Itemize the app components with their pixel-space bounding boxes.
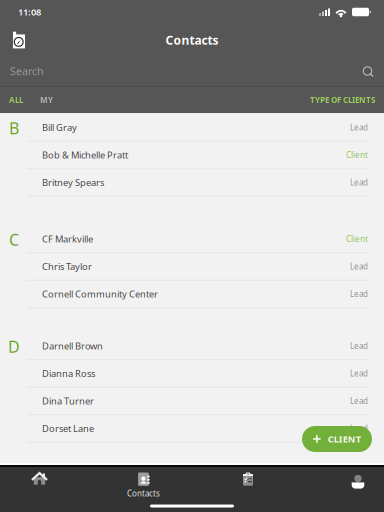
staticText: Dianna Ross <box>42 367 95 380</box>
staticText: Contacts <box>127 488 160 499</box>
staticText: C <box>9 229 19 250</box>
staticText: Client <box>346 234 368 244</box>
staticText: Chris Taylor <box>42 260 92 273</box>
staticText: B <box>9 117 19 138</box>
button[interactable]: MY <box>40 87 53 113</box>
staticText: Lead <box>350 341 368 351</box>
button[interactable]: ALL <box>0 87 40 113</box>
staticText: Lead <box>350 122 368 133</box>
button[interactable]: Dina Turner <box>0 388 384 415</box>
button[interactable]: Profile <box>332 472 384 512</box>
staticText: Lead <box>350 423 368 434</box>
button[interactable]: Dorset Lane <box>0 415 384 443</box>
button[interactable]: Search <box>0 56 384 86</box>
button[interactable]: CLIENT <box>302 426 372 452</box>
button[interactable]: CF Markville <box>0 226 384 253</box>
staticText: Client <box>346 150 368 160</box>
staticText: Lead <box>350 368 368 379</box>
button[interactable]: Contacts <box>105 472 181 512</box>
staticText: Cornell Community Center <box>42 288 158 300</box>
button[interactable]: Britney Spears <box>0 169 384 197</box>
button[interactable]: Home <box>1 470 77 512</box>
button[interactable]: Cornell Community Center <box>0 281 384 308</box>
button[interactable]: Bill Gray <box>0 114 384 142</box>
staticText: MY <box>40 95 53 105</box>
staticText: CF Markville <box>42 233 93 245</box>
staticText: Lead <box>350 289 368 299</box>
button[interactable]: TYPE OF CLIENTS <box>310 87 384 113</box>
button[interactable]: Darnell Brown <box>0 333 384 360</box>
staticText: Dorset Lane <box>42 422 94 435</box>
staticText: Bill Gray <box>42 121 77 134</box>
staticText: D <box>8 336 20 357</box>
staticText: Darnell Brown <box>42 340 103 352</box>
staticText: 11:08 <box>18 6 41 18</box>
staticText: Search <box>10 64 44 78</box>
staticText: TYPE OF CLIENTS <box>310 95 375 105</box>
staticText: Lead <box>350 396 368 406</box>
staticText: ALL <box>9 95 23 105</box>
staticText: Britney Spears <box>42 176 104 189</box>
button[interactable]: Chris Taylor <box>0 253 384 281</box>
staticText: Lead <box>350 177 368 188</box>
button[interactable]: App menu <box>4 25 34 55</box>
staticText: Contacts <box>165 32 218 48</box>
button[interactable]: Bob & Michelle Pratt <box>0 142 384 169</box>
staticText: Dina Turner <box>42 395 94 407</box>
staticText: Bob & Michelle Pratt <box>42 149 128 161</box>
staticText: CLIENT <box>328 433 361 445</box>
button[interactable]: Dianna Ross <box>0 360 384 388</box>
staticText: Lead <box>350 261 368 272</box>
button[interactable]: Tasks <box>210 471 286 512</box>
